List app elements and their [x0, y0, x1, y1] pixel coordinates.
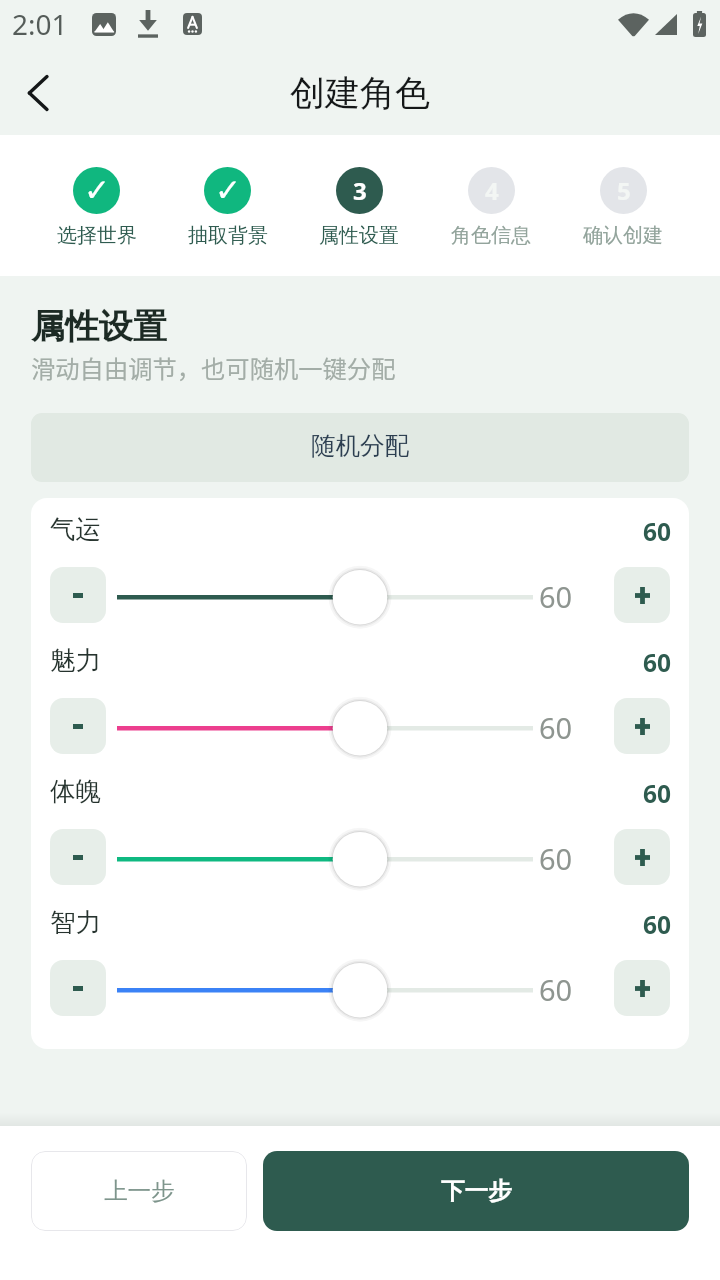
button[interactable]: Increase 魅力: [614, 698, 670, 754]
staticText: 3: [353, 174, 367, 207]
staticText: 60: [643, 908, 672, 939]
button[interactable]: ✓: [31, 167, 162, 248]
staticText: ✓: [215, 172, 241, 208]
staticText: 滑动自由调节，也可随机一键分配: [31, 350, 396, 385]
button[interactable]: Increase 气运: [614, 567, 670, 623]
button[interactable]: 随机分配: [31, 413, 689, 482]
button[interactable]: 体魄 slider: [117, 829, 533, 885]
button[interactable]: 下一步: [263, 1151, 689, 1231]
button[interactable]: 魅力 slider: [117, 698, 533, 754]
button[interactable]: 3: [293, 167, 425, 248]
staticText: 智力: [50, 906, 101, 937]
staticText: 60: [539, 577, 573, 616]
staticText: 体魄: [50, 775, 101, 806]
button[interactable]: 上一步: [31, 1151, 247, 1231]
button[interactable]: 5: [557, 167, 689, 248]
button[interactable]: Decrease 体魄: [50, 829, 106, 885]
button[interactable]: Increase 体魄: [614, 829, 670, 885]
button[interactable]: 4: [425, 167, 557, 248]
button[interactable]: Decrease 智力: [50, 960, 106, 1016]
staticText: 抽取背景: [188, 223, 268, 248]
staticText: 4: [485, 174, 499, 207]
staticText: 魅力: [50, 644, 101, 675]
staticText: ✓: [84, 172, 110, 208]
button[interactable]: 气运 slider: [117, 567, 533, 623]
staticText: 随机分配: [311, 430, 409, 461]
button[interactable]: Increase 智力: [614, 960, 670, 1016]
staticText: 气运: [50, 513, 101, 544]
button[interactable]: 智力 slider: [117, 960, 533, 1016]
staticText: 60: [539, 708, 573, 747]
button[interactable]: ✓: [162, 167, 293, 248]
staticText: 上一步: [104, 1176, 175, 1206]
staticText: 60: [643, 777, 672, 808]
button[interactable]: Decrease 魅力: [50, 698, 106, 754]
staticText: 下一步: [441, 1176, 512, 1206]
staticText: 创建角色: [290, 71, 430, 115]
staticText: 角色信息: [451, 223, 531, 248]
staticText: 确认创建: [583, 223, 663, 248]
staticText: 60: [643, 646, 672, 677]
button[interactable]: Decrease 气运: [50, 567, 106, 623]
staticText: 60: [539, 970, 573, 1009]
staticText: 选择世界: [57, 223, 137, 248]
staticText: 2:01: [12, 5, 68, 43]
button[interactable]: Back: [10, 65, 66, 121]
staticText: 属性设置: [319, 223, 399, 248]
staticText: 60: [643, 515, 672, 546]
staticText: 5: [617, 174, 631, 207]
staticText: 60: [539, 839, 573, 878]
staticText: 属性设置: [31, 305, 167, 348]
